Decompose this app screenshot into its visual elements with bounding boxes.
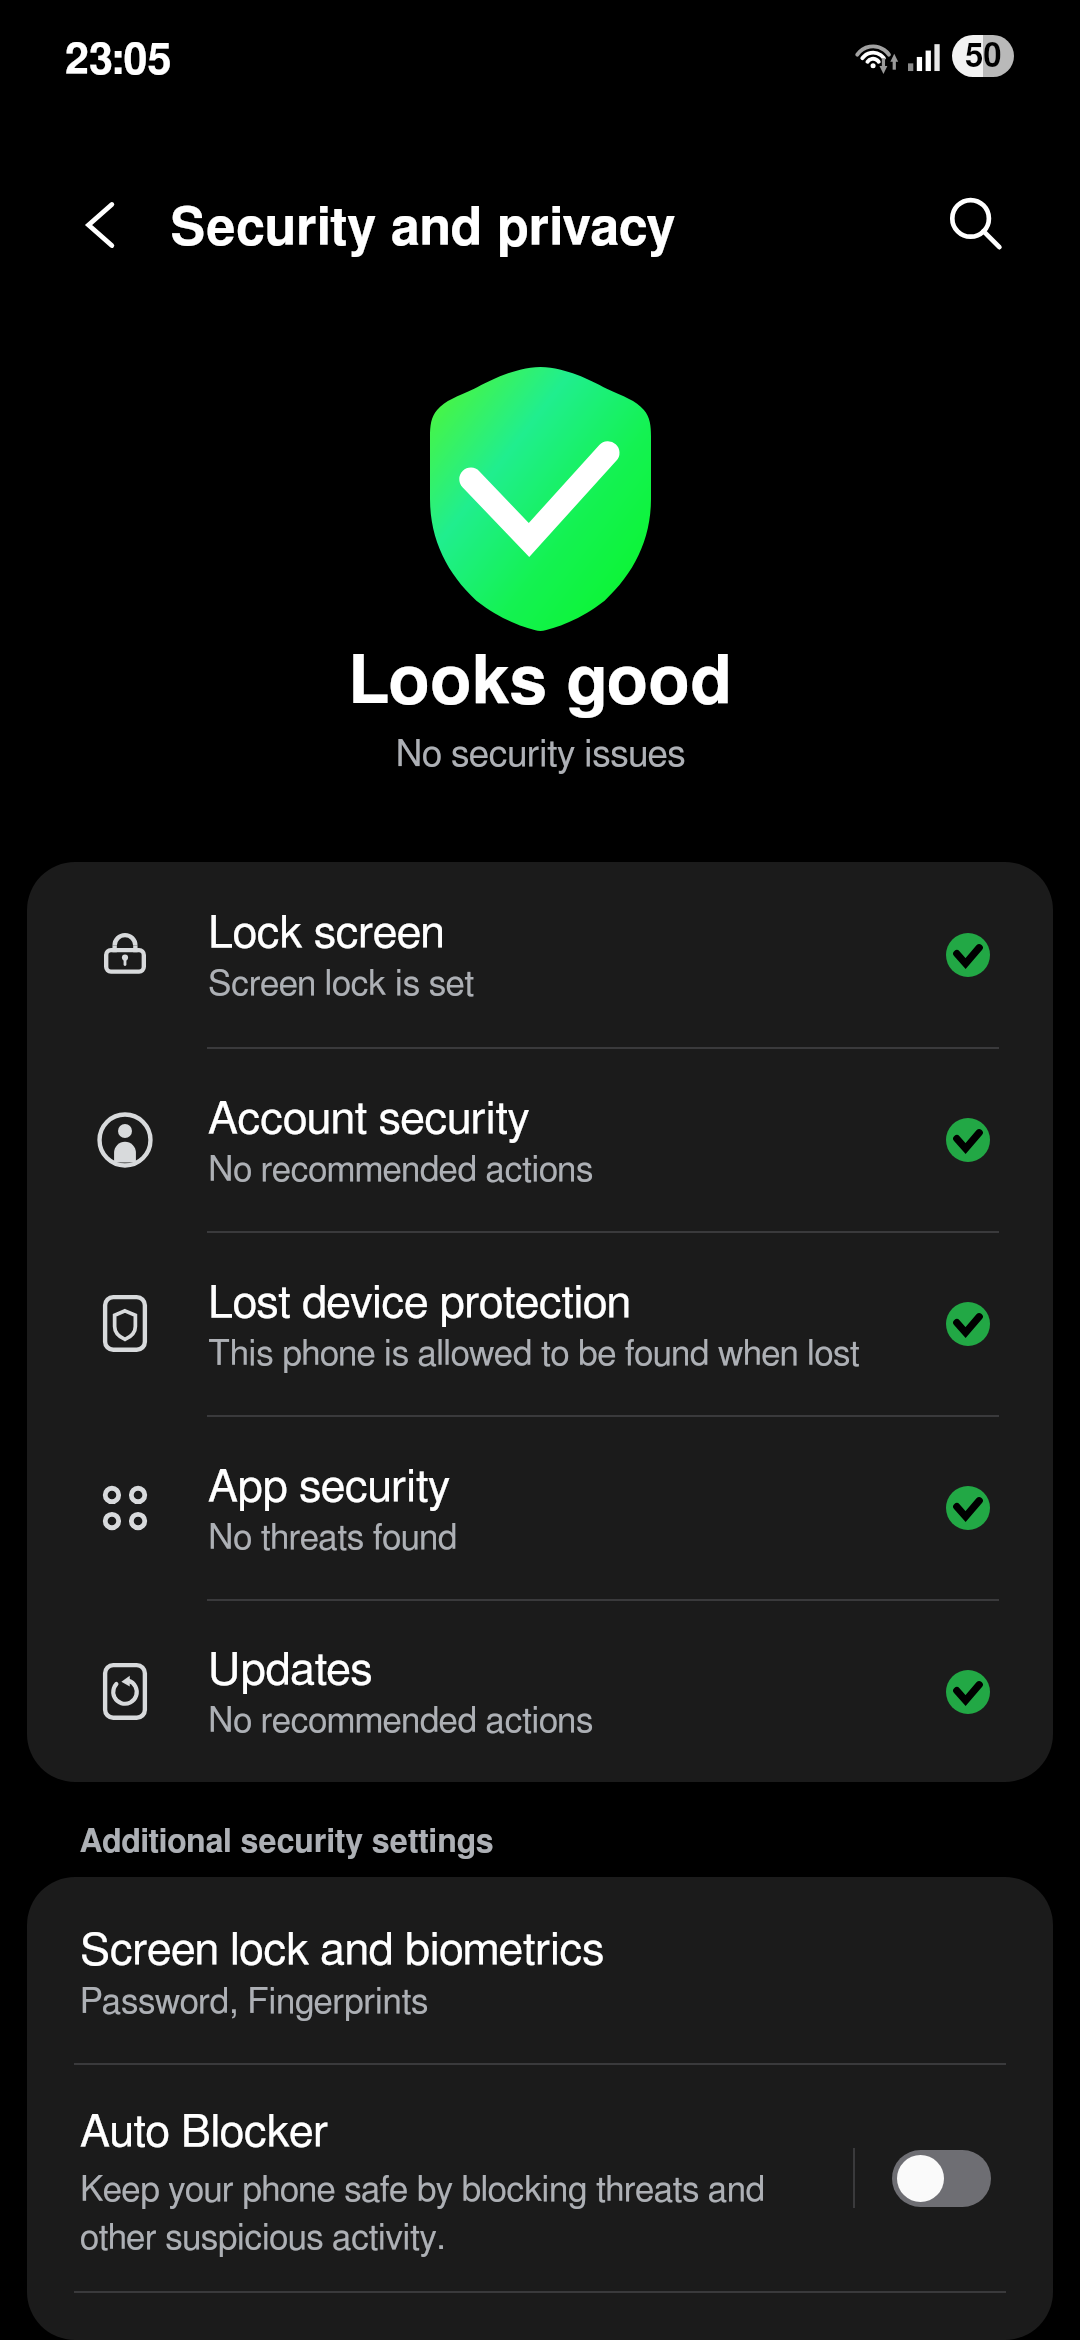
staticText: This phone is allowed to be found when l… xyxy=(208,1337,860,1372)
button[interactable]: Lock screen xyxy=(27,862,1053,1047)
button[interactable]: Lost device protection xyxy=(27,1233,1053,1415)
button[interactable]: Screen lock and biometrics xyxy=(27,1877,1053,2064)
staticText: Looks good xyxy=(348,649,732,717)
staticText: Additional security settings xyxy=(80,1826,494,1858)
staticText: Lost device protection xyxy=(208,1281,631,1326)
staticText: No recommended actions xyxy=(208,1704,594,1739)
button[interactable]: Updates xyxy=(27,1601,1053,1782)
staticText: 50 xyxy=(965,40,1002,73)
button[interactable]: Account security xyxy=(27,1049,1053,1231)
staticText: No recommended actions xyxy=(208,1153,594,1188)
staticText: Updates xyxy=(208,1648,373,1693)
button[interactable]: Auto Blocker xyxy=(27,2065,1053,2291)
staticText: No threats found xyxy=(208,1521,458,1556)
staticText: Screen lock is set xyxy=(208,967,475,1002)
button[interactable]: Auto Blocker toggle xyxy=(892,2150,991,2207)
staticText: 23:05 xyxy=(65,40,172,83)
staticText: Screen lock and biometrics xyxy=(80,1928,605,1973)
staticText: Keep your phone safe by blocking threats… xyxy=(80,2173,790,2256)
button[interactable]: App security xyxy=(27,1417,1053,1599)
staticText: Auto Blocker xyxy=(80,2110,329,2155)
staticText: No security issues xyxy=(395,736,686,773)
staticText: Password, Fingerprints xyxy=(80,1985,429,2020)
staticText: Lock screen xyxy=(208,911,445,956)
staticText: App security xyxy=(208,1465,450,1510)
button[interactable]: Search xyxy=(935,184,1017,266)
staticText: Security and privacy xyxy=(170,203,676,255)
button[interactable]: Back xyxy=(60,184,142,266)
staticText: Account security xyxy=(208,1097,530,1142)
